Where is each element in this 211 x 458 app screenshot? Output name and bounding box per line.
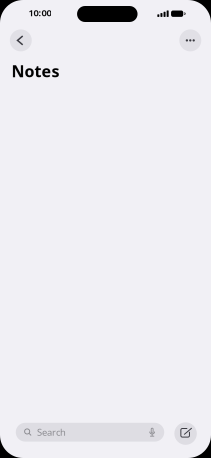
button[interactable]: More options	[179, 29, 201, 51]
button[interactable]: Search	[16, 423, 164, 442]
staticText: Search	[37, 426, 66, 438]
staticText: Notes	[11, 60, 59, 82]
staticText: 10:00	[28, 6, 51, 19]
button[interactable]: Back	[10, 29, 32, 51]
button[interactable]: New Note	[174, 422, 197, 445]
